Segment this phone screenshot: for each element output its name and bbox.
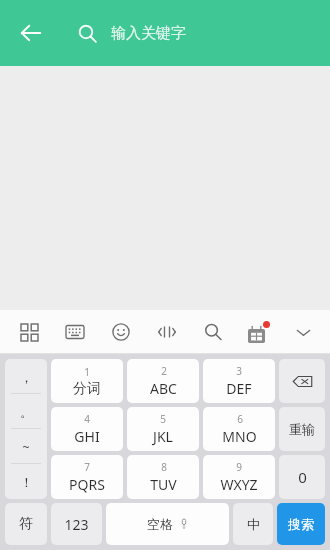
button[interactable]: Hide keyboard (288, 317, 318, 347)
button[interactable]: 输入关键字 (78, 11, 318, 55)
staticText: 分词 (73, 380, 101, 398)
staticText: 2 (161, 364, 167, 378)
staticText: 符 (19, 515, 33, 533)
button[interactable]: ， (5, 359, 47, 394)
staticText: ABC (150, 379, 177, 398)
staticText: 重输 (289, 421, 315, 437)
staticText: DEF (226, 379, 252, 398)
button[interactable]: 123 (51, 503, 102, 545)
staticText: TUV (150, 475, 177, 494)
staticText: ， (20, 369, 33, 385)
button[interactable]: Promotions (244, 317, 274, 347)
staticText: GHI (74, 427, 100, 446)
staticText: 。 (20, 404, 33, 420)
staticText: 0 (298, 467, 307, 487)
button[interactable]: Back (8, 10, 54, 56)
staticText: PQRS (69, 475, 105, 494)
button[interactable]: 2 (127, 359, 199, 403)
button[interactable]: ~ (5, 429, 47, 464)
staticText: 1 (84, 365, 90, 379)
button[interactable]: 7 (51, 455, 123, 499)
button[interactable]: Resize keyboard (152, 317, 182, 347)
staticText: 5 (160, 412, 166, 426)
button[interactable]: 9 (203, 455, 275, 499)
staticText: 空格 (147, 516, 173, 532)
button[interactable]: 4 (51, 407, 123, 451)
staticText: MNO (222, 427, 257, 446)
staticText: 输入关键字 (111, 24, 186, 43)
button[interactable]: 0 (279, 455, 325, 499)
staticText: ！ (20, 474, 33, 490)
button[interactable]: 符 (5, 503, 47, 545)
button[interactable]: 搜索 (277, 503, 325, 545)
button[interactable]: 6 (203, 407, 275, 451)
button[interactable]: Delete (279, 359, 325, 403)
button[interactable]: 1 (51, 359, 123, 403)
staticText: ~ (22, 438, 30, 456)
staticText: 6 (237, 412, 243, 426)
button[interactable]: Emoji (106, 317, 136, 347)
staticText: 8 (161, 460, 167, 474)
staticText: 中 (247, 516, 260, 532)
staticText: JKL (153, 427, 173, 446)
button[interactable]: 5 (127, 407, 199, 451)
staticText: WXYZ (220, 475, 258, 494)
staticText: 3 (236, 364, 242, 378)
staticText: 123 (64, 515, 89, 534)
button[interactable]: 3 (203, 359, 275, 403)
button[interactable]: ！ (5, 464, 47, 499)
staticText: 搜索 (288, 516, 314, 532)
button[interactable]: 中 (233, 503, 273, 545)
button[interactable]: Search (198, 317, 228, 347)
button[interactable]: 8 (127, 455, 199, 499)
staticText: 7 (84, 460, 90, 474)
button[interactable]: 。 (5, 394, 47, 429)
staticText: 9 (236, 460, 242, 474)
button[interactable]: Keyboard (60, 317, 90, 347)
button[interactable]: 重输 (279, 407, 325, 451)
button[interactable]: 空格 (106, 503, 229, 545)
button[interactable]: Keyboard layouts (14, 317, 44, 347)
staticText: 4 (84, 412, 90, 426)
